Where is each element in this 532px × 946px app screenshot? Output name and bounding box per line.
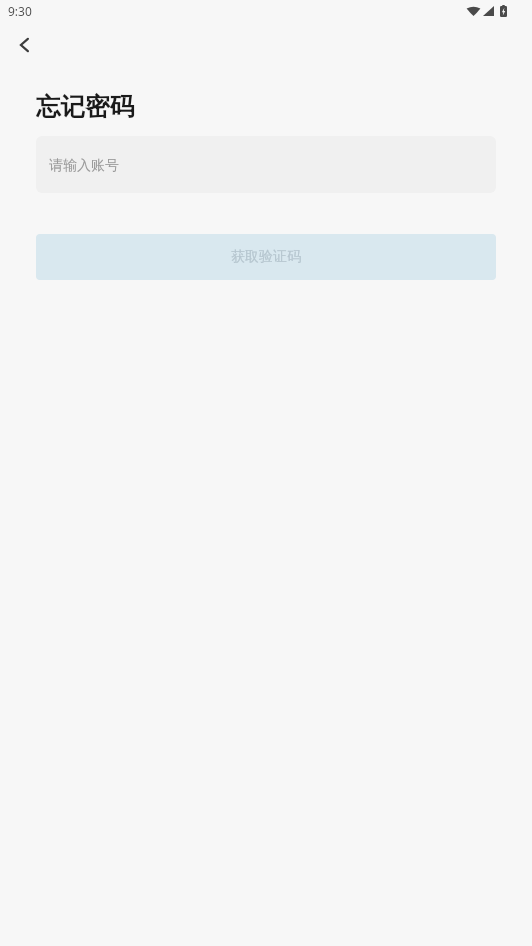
button[interactable]: Back xyxy=(7,27,43,63)
button[interactable]: 请输入账号 xyxy=(36,136,496,193)
staticText: 请输入账号 xyxy=(49,157,119,175)
staticText: 获取验证码 xyxy=(231,248,301,266)
button[interactable]: 获取验证码 xyxy=(36,234,496,280)
staticText: 9:30 xyxy=(8,3,32,19)
staticText: 忘记密码 xyxy=(36,91,134,122)
